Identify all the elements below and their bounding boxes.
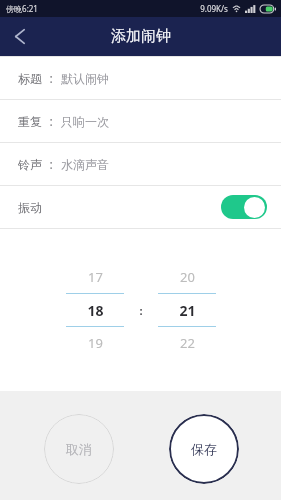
staticText: 9.09K/s [200,3,228,14]
staticText: 添加闹钟 [111,27,171,46]
staticText: 只响一次 [61,114,109,129]
staticText: 17 [88,268,103,286]
staticText: 21 [179,301,196,320]
button[interactable]: 21 [158,294,216,326]
staticText: 20 [180,268,195,286]
button[interactable]: 振动 [0,186,281,228]
button[interactable]: Vibration toggle [221,195,267,219]
staticText: : [49,156,53,172]
staticText: 保存 [191,441,217,457]
button[interactable]: 重复 [0,100,281,142]
staticText: : [49,70,53,86]
staticText: 铃声 [18,157,42,172]
button[interactable]: 18 [66,294,124,326]
staticText: 水滴声音 [61,157,109,172]
staticText: 重复 [18,114,42,129]
button[interactable]: 保存 [169,414,239,484]
staticText: 取消 [66,441,92,457]
staticText: 标题 [18,71,42,86]
staticText: 傍晚6:21 [6,3,38,14]
button[interactable]: Back [0,17,40,56]
button[interactable]: 标题 [0,57,281,99]
staticText: : [49,113,53,129]
button[interactable]: 取消 [44,414,114,484]
button[interactable]: 铃声 [0,143,281,185]
staticText: 22 [180,334,195,352]
staticText: 默认闹钟 [61,71,109,86]
staticText: 19 [88,334,103,352]
staticText: : [139,303,143,318]
staticText: 18 [87,301,104,320]
staticText: 振动 [18,200,42,215]
